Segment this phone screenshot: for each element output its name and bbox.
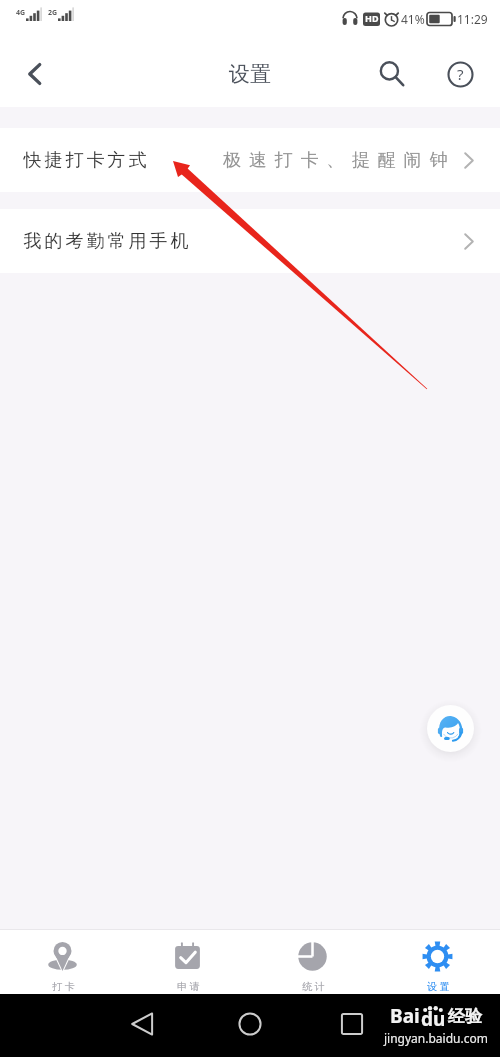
staticText: 极速打卡、提醒闹钟: [223, 149, 456, 172]
staticText: 4G: [16, 8, 26, 18]
staticText: ?: [457, 64, 464, 84]
staticText: 11:29: [457, 11, 488, 27]
staticText: 41%: [401, 11, 425, 27]
button[interactable]: Help: [437, 51, 483, 97]
staticText: 设置: [426, 980, 451, 993]
button[interactable]: Back: [12, 51, 58, 97]
button[interactable]: Recent apps: [330, 1002, 374, 1046]
button[interactable]: 打卡: [0, 930, 125, 994]
button[interactable]: Customer service: [427, 705, 474, 752]
staticText: 设置: [229, 61, 271, 87]
button[interactable]: 快捷打卡方式: [0, 128, 500, 192]
button[interactable]: 申请: [125, 930, 250, 994]
button[interactable]: 统计: [250, 930, 375, 994]
staticText: 申请: [176, 980, 201, 993]
staticText: jingyan.baidu.com: [384, 1030, 488, 1046]
staticText: du: [421, 1006, 446, 1032]
staticText: 我的考勤常用手机: [22, 230, 190, 253]
button[interactable]: Home: [228, 1002, 272, 1046]
staticText: 快捷打卡方式: [22, 149, 148, 172]
staticText: 打卡: [51, 980, 76, 993]
button[interactable]: Search: [369, 51, 415, 97]
button[interactable]: 设置: [375, 930, 500, 994]
button[interactable]: Back: [121, 1002, 165, 1046]
staticText: HD: [365, 12, 379, 24]
staticText: 经验: [448, 1006, 482, 1027]
button[interactable]: 我的考勤常用手机: [0, 209, 500, 273]
staticText: Bai: [390, 1003, 420, 1029]
staticText: 2G: [48, 8, 58, 18]
staticText: 统计: [301, 980, 326, 993]
